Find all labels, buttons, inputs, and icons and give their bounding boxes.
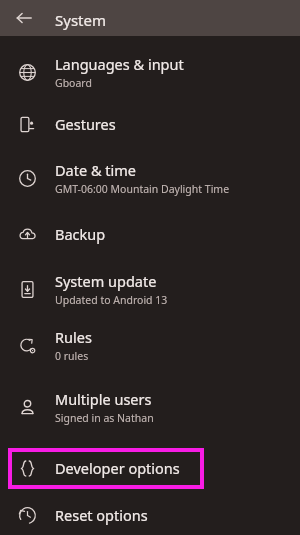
staticText: GMT-06:00 Mountain Daylight Time <box>55 182 230 196</box>
staticText: 0 rules <box>55 349 89 363</box>
staticText: Date & time <box>55 160 136 180</box>
staticText: System <box>55 10 106 30</box>
staticText: Updated to Android 13 <box>55 293 168 307</box>
button[interactable]: Back <box>11 5 37 31</box>
staticText: Developer options <box>55 458 180 478</box>
staticText: Reset options <box>55 505 148 525</box>
button[interactable]: Developer options <box>0 449 300 487</box>
button[interactable]: Multiple users <box>0 384 300 430</box>
staticText: Multiple users <box>55 389 152 409</box>
button[interactable]: Backup <box>0 215 300 253</box>
staticText: Rules <box>55 327 92 347</box>
button[interactable]: System update <box>0 266 300 312</box>
button[interactable]: Reset options <box>0 496 300 534</box>
staticText: Languages & input <box>55 54 184 74</box>
button[interactable]: Languages & input <box>0 49 300 95</box>
staticText: System update <box>55 271 157 291</box>
staticText: Backup <box>55 224 106 244</box>
staticText: Signed in as Nathan <box>55 411 154 425</box>
button[interactable]: Rules <box>0 322 300 368</box>
staticText: Gestures <box>55 114 116 134</box>
button[interactable]: Gestures <box>0 105 300 143</box>
staticText: Gboard <box>55 76 92 90</box>
button[interactable]: Date & time <box>0 155 300 201</box>
